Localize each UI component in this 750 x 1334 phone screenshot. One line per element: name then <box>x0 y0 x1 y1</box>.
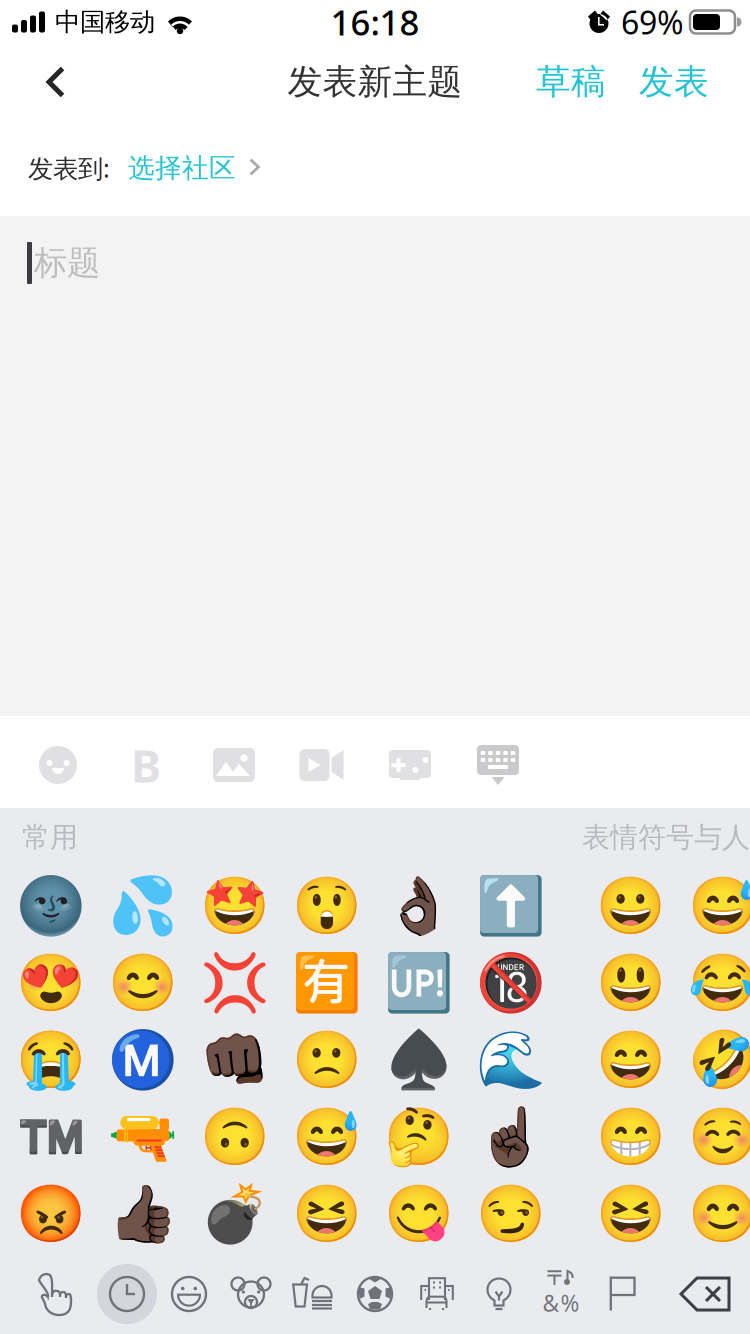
button[interactable]: Recently used <box>16 1260 96 1328</box>
staticText: 😂 <box>688 950 750 1014</box>
button[interactable]: 🤩 <box>189 867 281 944</box>
button[interactable]: 🔫 <box>97 1098 189 1175</box>
staticText: 😃 <box>596 950 666 1014</box>
button[interactable]: 发表 <box>619 44 729 120</box>
button[interactable]: 💢 <box>189 944 281 1021</box>
button[interactable]: 选择社区 <box>110 152 271 184</box>
button[interactable]: 😍 <box>5 944 97 1021</box>
staticText: 69% <box>621 1 684 43</box>
staticText: 标题 <box>34 242 100 283</box>
staticText: 表情符号与人 <box>582 820 750 855</box>
button[interactable]: Smileys and people <box>158 1260 220 1328</box>
staticText: 中国移动 <box>55 6 155 37</box>
button[interactable]: Animals and nature <box>220 1260 282 1328</box>
button[interactable]: Symbols <box>530 1260 592 1328</box>
staticText: 🤣 <box>688 1027 750 1091</box>
button[interactable]: ™️ <box>5 1098 97 1175</box>
button[interactable]: 🙁 <box>281 1021 373 1098</box>
button[interactable]: 💦 <box>97 867 189 944</box>
button[interactable]: Ⓜ️ <box>97 1021 189 1098</box>
button[interactable]: Flags <box>592 1260 654 1328</box>
button[interactable]: Game <box>366 720 454 810</box>
button[interactable]: Frequently used <box>96 1260 158 1328</box>
staticText: 😊 <box>688 1181 750 1245</box>
staticText: & <box>542 1288 559 1318</box>
button[interactable]: Travel and places <box>406 1260 468 1328</box>
button[interactable]: 😏 <box>465 1175 557 1252</box>
button[interactable]: 🌚 <box>5 867 97 944</box>
staticText: 😁 <box>596 1104 666 1168</box>
button[interactable]: 😁 <box>585 1098 677 1175</box>
staticText: 常用 <box>22 820 78 855</box>
button[interactable]: 🤣 <box>677 1021 750 1098</box>
staticText: 👊🏿 <box>200 1027 270 1091</box>
staticText: 发表 <box>639 61 709 103</box>
button[interactable]: 😂 <box>677 944 750 1021</box>
button[interactable]: ⬆️ <box>465 867 557 944</box>
button[interactable]: 🤔 <box>373 1098 465 1175</box>
button[interactable]: 👊🏿 <box>189 1021 281 1098</box>
staticText: 😡 <box>16 1181 86 1245</box>
staticText: 16:18 <box>330 0 419 45</box>
staticText: 🌊 <box>476 1027 546 1091</box>
staticText: 😀 <box>596 873 666 937</box>
staticText: 😅 <box>292 1104 362 1168</box>
button[interactable]: ♠️ <box>373 1021 465 1098</box>
button[interactable]: 😲 <box>281 867 373 944</box>
button[interactable]: 草稿 <box>523 44 619 120</box>
button[interactable]: 🌊 <box>465 1021 557 1098</box>
staticText: 草稿 <box>536 61 606 103</box>
button[interactable]: 😋 <box>373 1175 465 1252</box>
staticText: B <box>131 735 161 795</box>
staticText: 发表新主题 <box>287 61 462 103</box>
staticText: 😄 <box>596 1027 666 1091</box>
button[interactable]: 😆 <box>281 1175 373 1252</box>
button[interactable]: ☝🏿 <box>465 1098 557 1175</box>
button[interactable]: Objects <box>468 1260 530 1328</box>
staticText: 😲 <box>292 873 362 937</box>
staticText: ☝🏿 <box>476 1104 546 1168</box>
staticText: 🔫 <box>108 1104 178 1168</box>
staticText: 👌🏿 <box>384 873 454 937</box>
button[interactable]: 😅 <box>281 1098 373 1175</box>
button[interactable]: 👍🏿 <box>97 1175 189 1252</box>
staticText: 选择社区 <box>128 152 236 184</box>
staticText: 😭 <box>16 1027 86 1091</box>
button[interactable]: 😊 <box>677 1175 750 1252</box>
staticText: 💢 <box>200 950 270 1014</box>
staticText: 💣 <box>200 1181 270 1245</box>
button[interactable]: 🔞 <box>465 944 557 1021</box>
button[interactable]: 🆙 <box>373 944 465 1021</box>
button[interactable]: 😊 <box>97 944 189 1021</box>
button[interactable]: Video <box>278 720 366 810</box>
button[interactable]: Photo <box>190 720 278 810</box>
button[interactable]: 👌🏿 <box>373 867 465 944</box>
button[interactable]: Keyboard <box>454 720 542 810</box>
button[interactable]: Bold <box>102 720 190 810</box>
staticText: ☺️ <box>688 1104 750 1168</box>
button[interactable]: 😀 <box>585 867 677 944</box>
button[interactable]: Back <box>20 44 92 120</box>
staticText: 😏 <box>476 1181 546 1245</box>
button[interactable]: 😅 <box>677 867 750 944</box>
button[interactable]: 💣 <box>189 1175 281 1252</box>
button[interactable]: 😭 <box>5 1021 97 1098</box>
staticText: ™️ <box>16 1104 86 1168</box>
staticText: 😅 <box>688 873 750 937</box>
staticText: 发表到: <box>28 151 110 185</box>
button[interactable]: 😄 <box>585 1021 677 1098</box>
staticText: 🌚 <box>16 873 86 937</box>
staticText: 🆙 <box>384 950 454 1014</box>
button[interactable]: Delete <box>668 1260 742 1328</box>
staticText: Ⓜ️ <box>108 1027 178 1091</box>
button[interactable]: Food and drink <box>282 1260 344 1328</box>
button[interactable]: 😡 <box>5 1175 97 1252</box>
button[interactable]: Activity <box>344 1260 406 1328</box>
button[interactable]: 😆 <box>585 1175 677 1252</box>
button[interactable]: 🙃 <box>189 1098 281 1175</box>
button[interactable]: 😃 <box>585 944 677 1021</box>
button[interactable]: 🈶 <box>281 944 373 1021</box>
button[interactable]: Emoji <box>14 720 102 810</box>
button[interactable]: ☺️ <box>677 1098 750 1175</box>
staticText: 😆 <box>292 1181 362 1245</box>
